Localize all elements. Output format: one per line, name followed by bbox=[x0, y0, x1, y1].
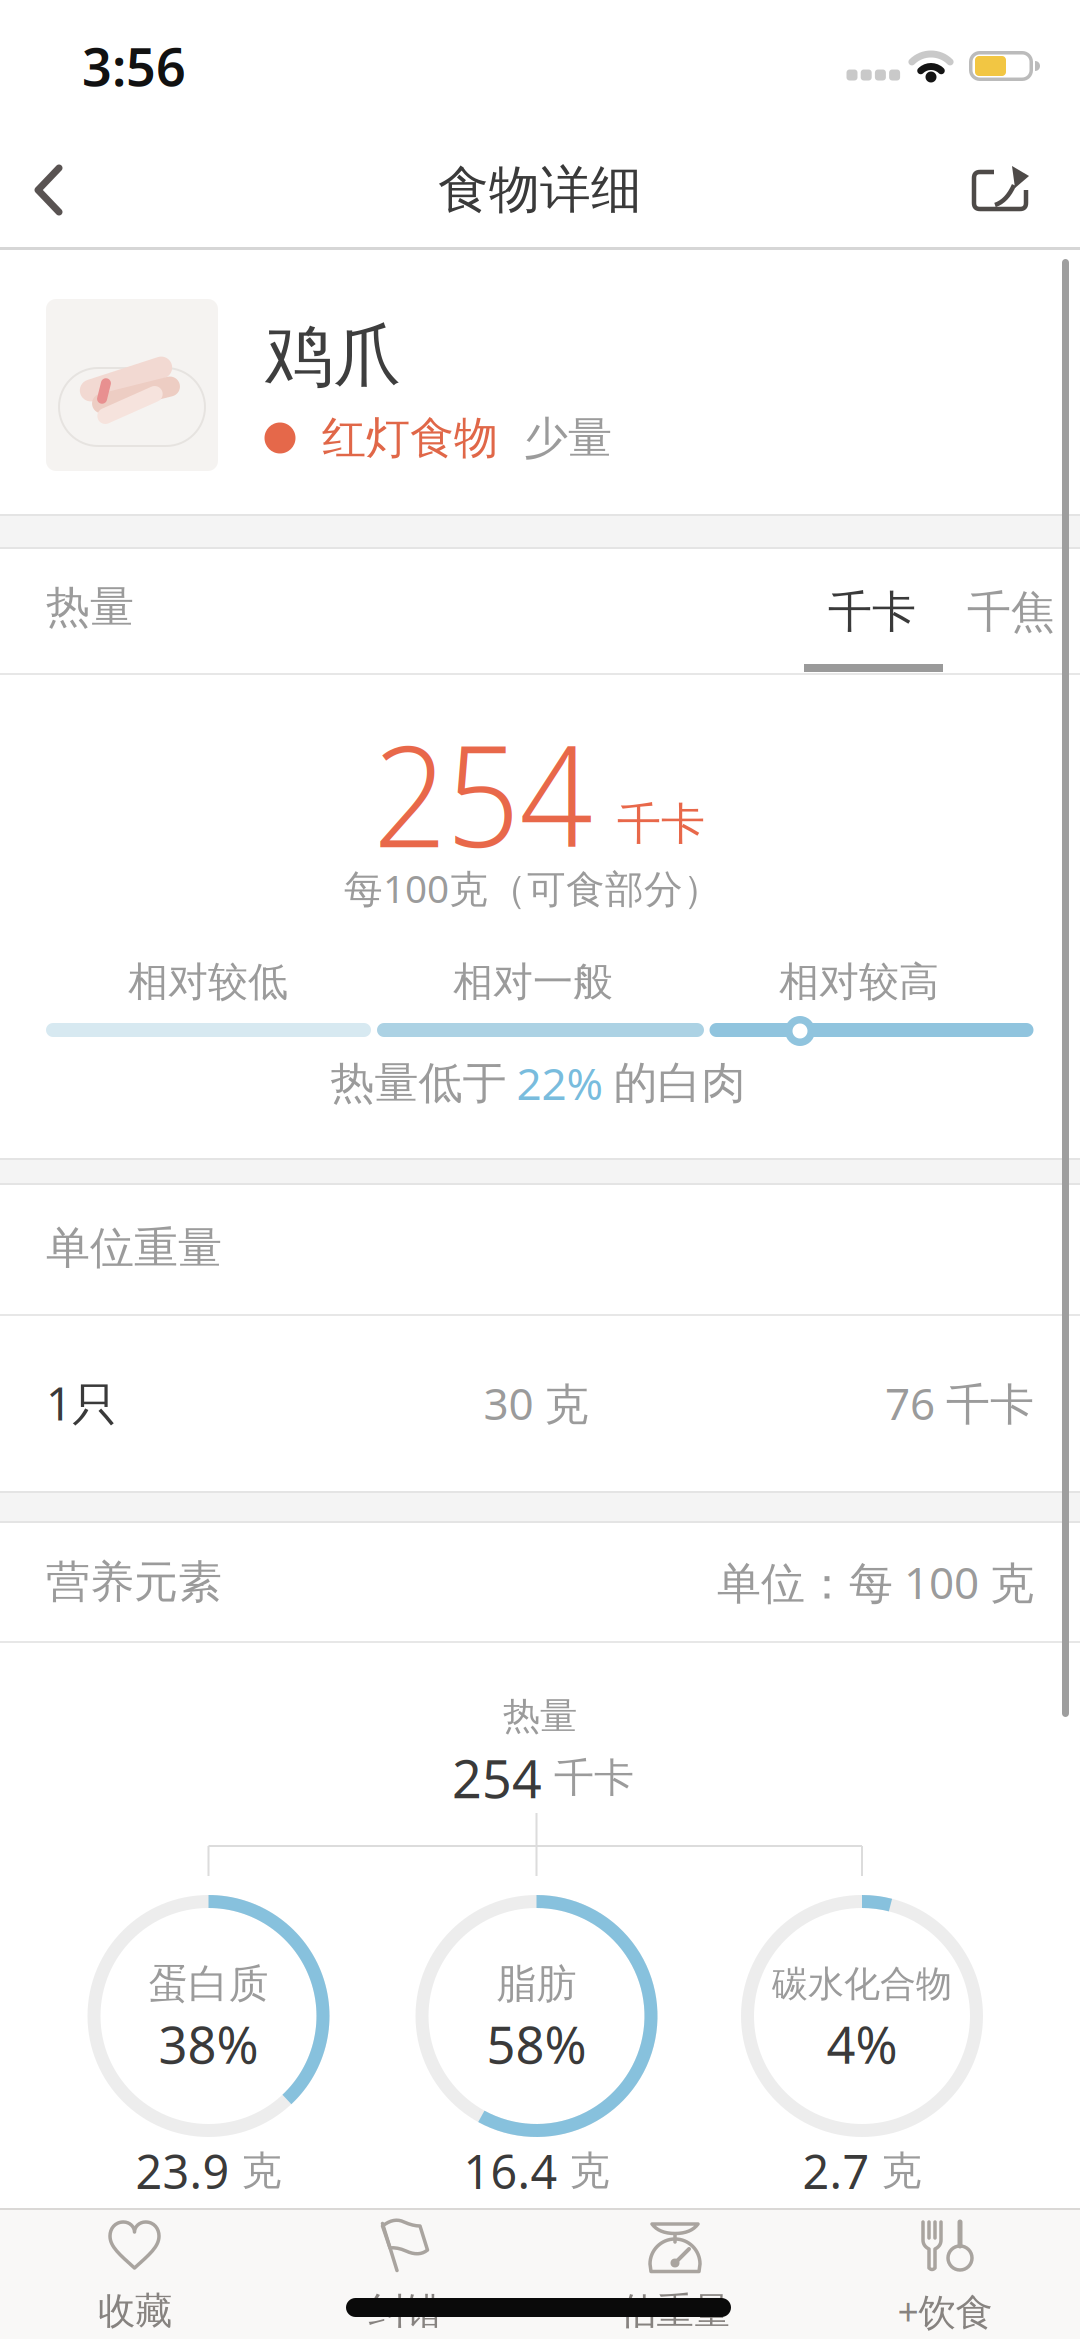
button[interactable]: Back bbox=[13, 135, 103, 245]
staticText: +饮食 bbox=[897, 2286, 992, 2336]
staticText: 76 千卡 bbox=[885, 1374, 1034, 1432]
staticText: 58% bbox=[486, 2010, 586, 2078]
staticText: 相对较高 bbox=[779, 957, 939, 1006]
staticText: 碳水化合物 bbox=[772, 1962, 952, 2006]
button[interactable]: Share bbox=[950, 140, 1050, 240]
staticText: 热量低于 bbox=[330, 1056, 506, 1110]
staticText: 千卡 bbox=[617, 797, 705, 851]
staticText: 克 bbox=[241, 2146, 281, 2195]
staticText: 单位重量 bbox=[46, 1221, 222, 1275]
staticText: 2.7 bbox=[802, 2140, 869, 2202]
staticText: 少量 bbox=[498, 411, 612, 465]
staticText: 红灯食物 bbox=[322, 411, 498, 465]
staticText: 蛋白质 bbox=[148, 1959, 268, 2008]
button[interactable]: 估重量 bbox=[540, 2208, 810, 2339]
staticText: 1只 bbox=[46, 1373, 117, 1433]
staticText: 食物详细 bbox=[438, 159, 642, 221]
staticText: 估重量 bbox=[619, 2288, 730, 2334]
staticText: 254 bbox=[452, 1743, 542, 1813]
button[interactable]: 千卡 bbox=[807, 562, 937, 662]
staticText: 3:56 bbox=[82, 31, 186, 101]
staticText: 克 bbox=[569, 2146, 609, 2195]
button[interactable]: 纠错 bbox=[270, 2208, 540, 2339]
staticText: 单位：每 100 克 bbox=[717, 1553, 1034, 1611]
staticText: 每100克（可食部分） bbox=[344, 862, 722, 914]
staticText: 千焦 bbox=[967, 585, 1055, 639]
staticText: 4% bbox=[826, 2010, 897, 2078]
staticText: 38% bbox=[158, 2010, 258, 2078]
staticText: 脂肪 bbox=[496, 1959, 576, 2008]
staticText: 鸡爪 bbox=[265, 314, 401, 398]
button[interactable]: 1只 bbox=[0, 1315, 1080, 1491]
staticText: 254 bbox=[373, 698, 592, 888]
staticText: 30 克 bbox=[483, 1374, 588, 1432]
staticText: 克 bbox=[881, 2146, 921, 2195]
staticText: 16.4 bbox=[463, 2140, 557, 2202]
staticText: 千卡 bbox=[554, 1753, 634, 1802]
staticText: 22% bbox=[516, 1054, 603, 1112]
staticText: 营养元素 bbox=[46, 1555, 222, 1609]
staticText: 23.9 bbox=[135, 2140, 229, 2202]
staticText: 热量 bbox=[46, 580, 134, 634]
staticText: 热量 bbox=[503, 1693, 577, 1739]
button[interactable]: 千焦 bbox=[946, 562, 1076, 662]
staticText: 相对较低 bbox=[128, 957, 288, 1006]
staticText: 千卡 bbox=[828, 585, 916, 639]
staticText: 纠错 bbox=[368, 2288, 442, 2334]
staticText: 相对一般 bbox=[453, 957, 613, 1006]
staticText: 收藏 bbox=[98, 2288, 172, 2334]
button[interactable]: 收藏 bbox=[0, 2208, 270, 2339]
staticText: 的白肉 bbox=[613, 1056, 745, 1110]
button[interactable]: +饮食 bbox=[810, 2208, 1080, 2339]
